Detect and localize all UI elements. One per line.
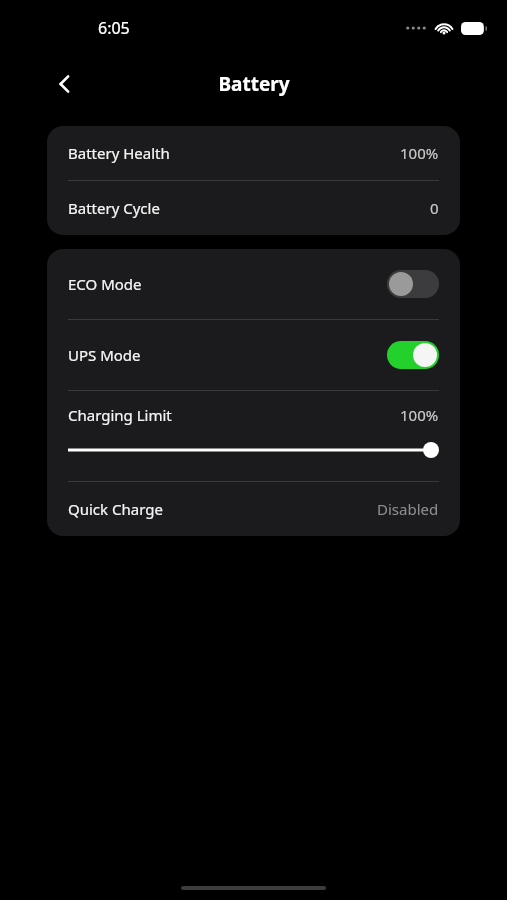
button[interactable]: Battery Cycle xyxy=(47,181,460,235)
staticText: UPS Mode xyxy=(68,345,141,365)
button[interactable]: Battery Health xyxy=(47,126,460,180)
button[interactable]: Quick Charge xyxy=(47,482,460,536)
staticText: 100% xyxy=(400,143,439,163)
staticText: 100% xyxy=(400,405,439,425)
button[interactable]: ECO Mode xyxy=(47,249,460,319)
staticText: Quick Charge xyxy=(68,499,163,519)
staticText: ECO Mode xyxy=(68,274,142,294)
staticText: Disabled xyxy=(377,499,439,519)
staticText: Battery Cycle xyxy=(68,198,160,218)
button[interactable]: Back xyxy=(44,63,86,105)
button[interactable]: UPS Mode xyxy=(47,320,460,390)
staticText: 0 xyxy=(430,198,439,218)
staticText: Battery xyxy=(218,71,290,97)
staticText: Battery Health xyxy=(68,143,170,163)
staticText: Charging Limit xyxy=(68,405,172,425)
staticText: 6:05 xyxy=(98,17,130,39)
button[interactable]: Charging Limit xyxy=(47,391,460,481)
